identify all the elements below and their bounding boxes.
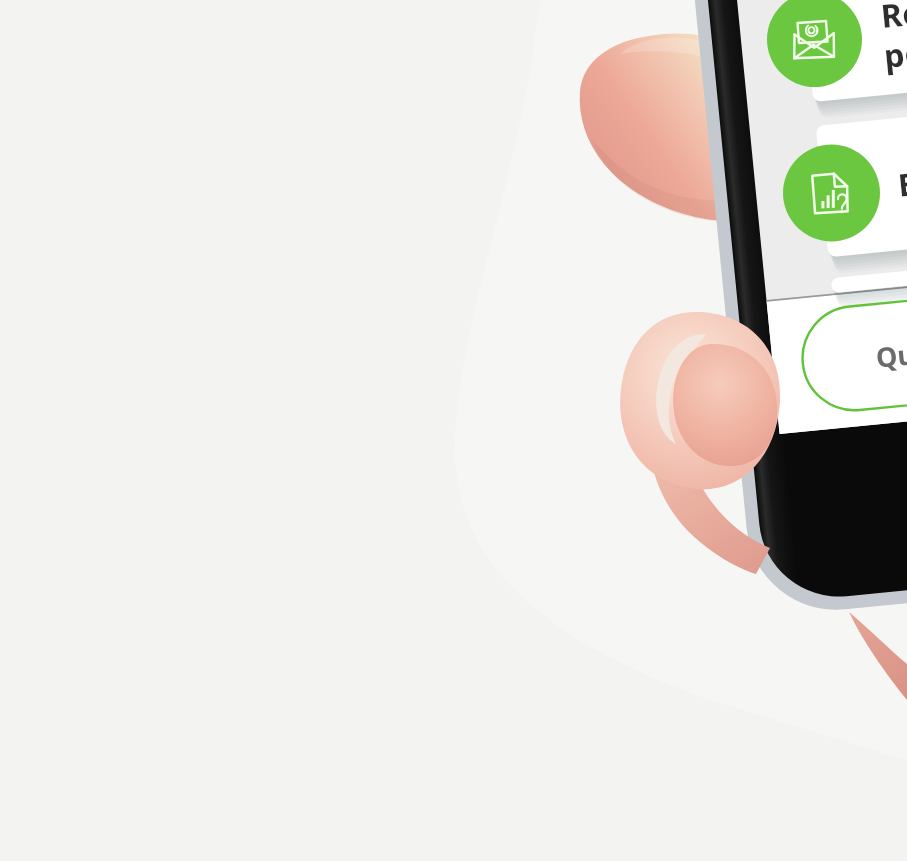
staticText: po bbox=[882, 30, 907, 78]
button[interactable]: E bbox=[780, 138, 907, 256]
button[interactable]: Qu bbox=[798, 304, 907, 414]
staticText: Qu bbox=[874, 335, 907, 376]
staticText: Re bbox=[879, 0, 907, 38]
staticText: E bbox=[896, 162, 907, 206]
button[interactable]: Re bbox=[766, 0, 907, 98]
